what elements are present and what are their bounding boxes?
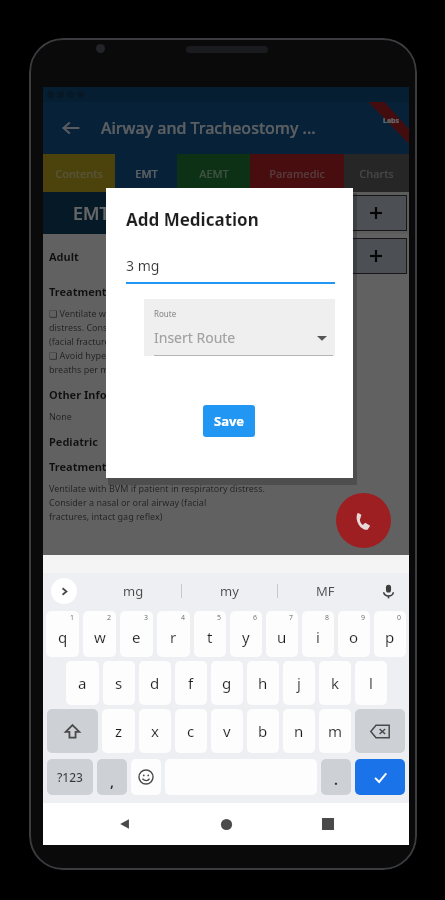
staticText: 5: [217, 613, 222, 623]
button[interactable]: 5: [194, 611, 226, 657]
button[interactable]: d: [139, 661, 171, 705]
staticText: x: [151, 721, 159, 741]
button[interactable]: MF: [278, 582, 373, 600]
staticText: v: [223, 721, 231, 741]
button[interactable]: m: [319, 709, 351, 753]
staticText: ,: [110, 772, 114, 791]
staticText: (facial fractures, intact gag reflex): [49, 335, 190, 347]
button[interactable]: Period: [321, 759, 351, 795]
button[interactable]: Enter: [355, 759, 405, 795]
staticText: my: [220, 582, 239, 600]
staticText: 7: [289, 613, 294, 623]
staticText: EMT: [73, 201, 110, 226]
button[interactable]: 4: [157, 611, 190, 657]
staticText: b: [258, 721, 268, 741]
button[interactable]: Add: [345, 195, 407, 231]
staticText: 9: [361, 613, 366, 623]
button[interactable]: k: [319, 661, 351, 705]
button[interactable]: my: [182, 582, 277, 600]
staticText: h: [258, 673, 268, 693]
button[interactable]: 0: [374, 611, 406, 657]
button[interactable]: j: [283, 661, 315, 705]
button[interactable]: Contents: [43, 154, 115, 192]
button[interactable]: 7: [266, 611, 298, 657]
staticText: l: [369, 673, 373, 693]
button[interactable]: Voice input: [373, 573, 403, 609]
button[interactable]: Paramedic: [250, 154, 344, 192]
staticText: 3 mg: [126, 256, 160, 275]
staticText: Airway and Tracheostomy ...: [101, 117, 316, 139]
staticText: AEMT: [199, 166, 229, 181]
button[interactable]: Modifier key: [355, 709, 405, 753]
staticText: p: [385, 627, 395, 647]
button[interactable]: v: [211, 709, 243, 753]
staticText: Paramedic: [269, 166, 325, 181]
staticText: u: [277, 627, 287, 647]
button[interactable]: mg: [85, 582, 181, 600]
staticText: Charts: [359, 166, 394, 181]
button[interactable]: c: [175, 709, 207, 753]
staticText: i: [316, 627, 320, 647]
button[interactable]: More suggestions: [51, 578, 77, 604]
button[interactable]: g: [211, 661, 243, 705]
button[interactable]: l: [355, 661, 387, 705]
button[interactable]: 8: [302, 611, 334, 657]
staticText: Treatment Plan: [49, 284, 134, 299]
staticText: z: [115, 721, 123, 741]
button[interactable]: Add: [345, 238, 407, 274]
button[interactable]: Charts: [344, 154, 409, 192]
button[interactable]: s: [103, 661, 135, 705]
button[interactable]: f: [175, 661, 207, 705]
staticText: e: [132, 627, 141, 647]
button[interactable]: Comma: [97, 759, 127, 795]
button[interactable]: 2: [83, 611, 116, 657]
button[interactable]: ?123: [47, 759, 93, 795]
staticText: Ventilate with BVM if patient in respira…: [49, 482, 265, 494]
button[interactable]: z: [102, 709, 135, 753]
staticText: 3: [144, 613, 149, 623]
staticText: Other Information: [49, 387, 151, 402]
button[interactable]: Recents: [308, 804, 348, 844]
button[interactable]: 1: [46, 611, 79, 657]
button[interactable]: Back: [105, 804, 145, 844]
staticText: o: [349, 627, 359, 647]
staticText: Adult: [49, 249, 79, 264]
button[interactable]: 3: [120, 611, 153, 657]
staticText: breaths per minute.: [49, 363, 133, 375]
button[interactable]: Route: [144, 299, 335, 356]
staticText: Route: [154, 308, 177, 319]
staticText: EMT: [135, 166, 158, 181]
staticText: None: [49, 410, 72, 422]
staticText: a: [78, 673, 87, 693]
button[interactable]: Modifier key: [47, 709, 98, 753]
staticText: Labs: [383, 116, 400, 126]
button[interactable]: Emoji: [131, 759, 161, 795]
staticText: Contents: [55, 166, 103, 181]
staticText: .: [334, 770, 338, 789]
button[interactable]: n: [283, 709, 315, 753]
staticText: d: [150, 673, 160, 693]
button[interactable]: EMT: [115, 154, 177, 192]
staticText: distress. Consider a nasal or oral airwa…: [49, 321, 217, 333]
button[interactable]: a: [66, 661, 99, 705]
button[interactable]: 6: [230, 611, 262, 657]
staticText: Treatment Plan: [49, 459, 134, 474]
staticText: 1: [70, 613, 75, 623]
button[interactable]: b: [247, 709, 279, 753]
staticText: c: [187, 721, 195, 741]
button[interactable]: Save: [203, 405, 255, 437]
button[interactable]: Back: [51, 108, 91, 148]
staticText: t: [207, 627, 213, 647]
staticText: 4: [181, 613, 186, 623]
button[interactable]: Call: [336, 493, 391, 548]
button[interactable]: x: [139, 709, 171, 753]
button[interactable]: AEMT: [177, 154, 250, 192]
staticText: MF: [316, 582, 335, 600]
staticText: Insert Route: [154, 328, 236, 347]
button[interactable]: h: [247, 661, 279, 705]
staticText: q: [58, 627, 68, 647]
staticText: y: [242, 627, 250, 647]
button[interactable]: 9: [338, 611, 370, 657]
button[interactable]: Home: [206, 804, 246, 844]
